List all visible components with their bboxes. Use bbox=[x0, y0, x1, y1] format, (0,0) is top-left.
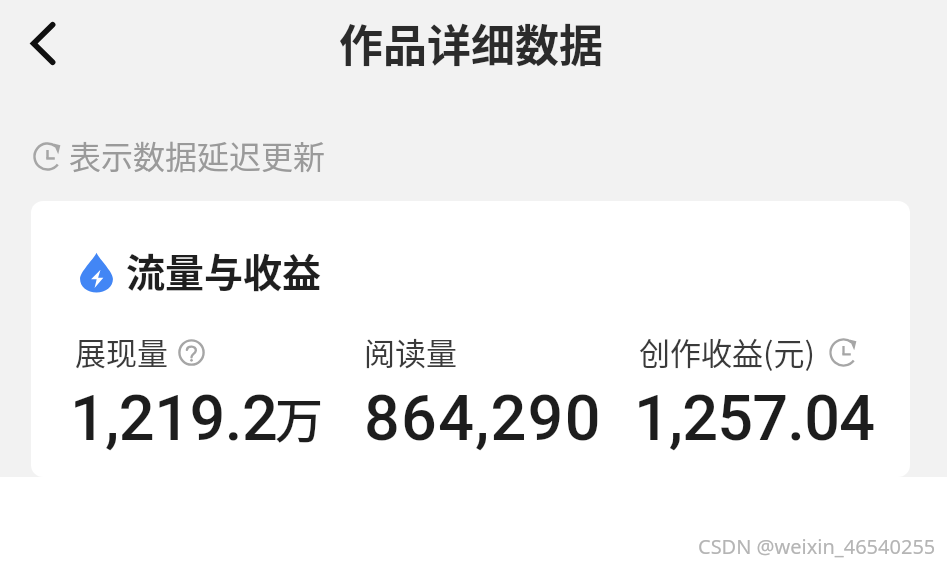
staticText: 1,219.2 bbox=[70, 382, 278, 456]
staticText: 1,257.04 bbox=[634, 382, 875, 456]
button[interactable]: Help bbox=[178, 339, 206, 367]
staticText: 创作收益(元) bbox=[639, 329, 815, 374]
staticText: 864,290 bbox=[364, 382, 602, 456]
staticText: 展现量 bbox=[75, 329, 168, 374]
staticText: 阅读量 bbox=[364, 329, 457, 374]
staticText: CSDN @weixin_46540255 bbox=[698, 533, 936, 560]
staticText: 万 bbox=[275, 382, 324, 452]
staticText: 表示数据延迟更新 bbox=[69, 132, 326, 178]
staticText: 作品详细数据 bbox=[339, 11, 603, 75]
staticText: 流量与收益 bbox=[126, 242, 322, 298]
button[interactable]: Back bbox=[9, 10, 75, 76]
